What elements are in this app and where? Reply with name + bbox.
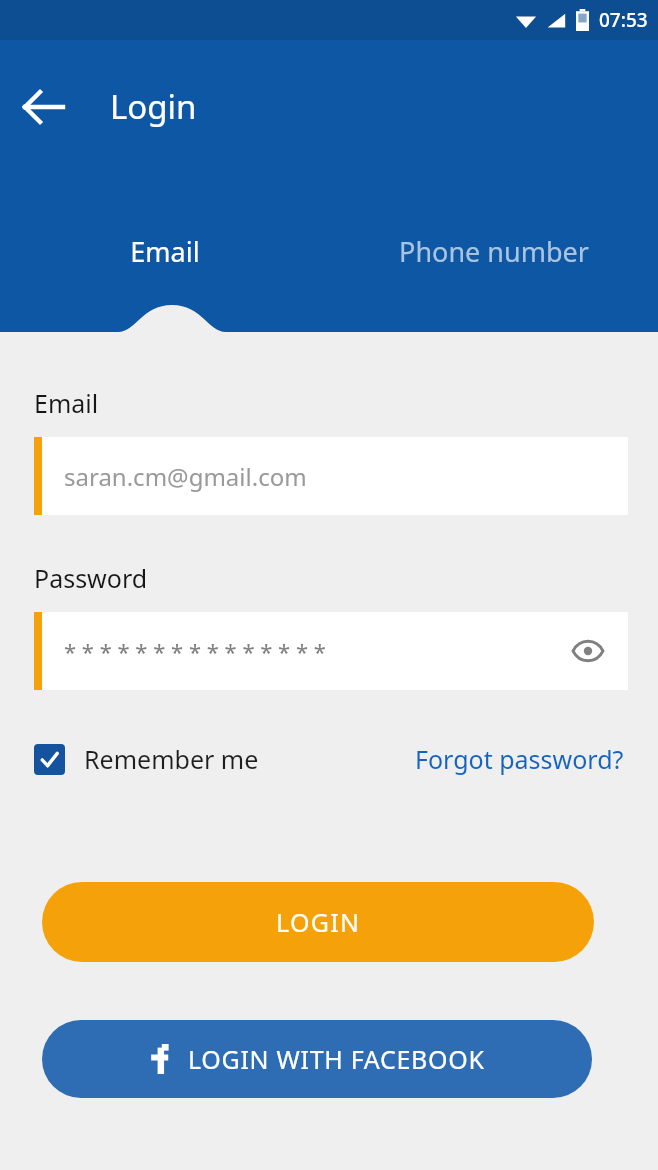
button[interactable]: LOGIN (42, 882, 594, 962)
staticText: Forgot password? (415, 742, 624, 776)
staticText: * * * * * * * * * * * * * * * (64, 636, 326, 666)
button[interactable]: LOGIN WITH FACEBOOK (42, 1020, 592, 1098)
staticText: Email (34, 386, 99, 420)
staticText: LOGIN (276, 905, 361, 939)
staticText: Password (34, 561, 148, 595)
staticText: LOGIN WITH FACEBOOK (188, 1042, 485, 1076)
staticText: Login (110, 84, 197, 129)
button[interactable]: Remember me (34, 742, 259, 776)
button[interactable]: Forgot password? (415, 742, 624, 776)
button[interactable]: * * * * * * * * * * * * * * * (34, 612, 628, 690)
button[interactable]: Back (10, 78, 78, 136)
staticText: saran.cm@gmail.com (64, 460, 307, 493)
staticText: 07:53 (599, 7, 648, 33)
button[interactable]: Show password (566, 629, 610, 673)
staticText: Email (130, 233, 200, 270)
button[interactable]: Email (0, 226, 329, 276)
staticText: Phone number (399, 233, 589, 270)
button[interactable]: saran.cm@gmail.com (34, 437, 628, 515)
staticText: Remember me (84, 742, 259, 776)
button[interactable]: Phone number (329, 226, 658, 276)
